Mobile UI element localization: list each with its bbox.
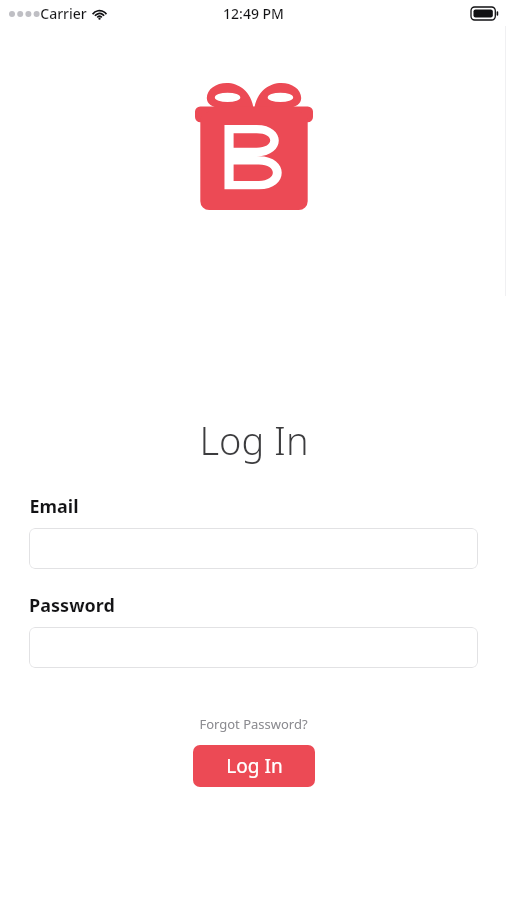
button[interactable]: Log In	[193, 745, 315, 787]
staticText: Email	[29, 494, 79, 519]
staticText: Log In	[226, 753, 283, 779]
button[interactable]: Forgot Password?	[193, 712, 314, 736]
button[interactable]	[29, 528, 478, 569]
staticText: Forgot Password?	[199, 715, 308, 733]
staticText: Password	[29, 593, 115, 618]
staticText: 12:49 PM	[223, 4, 284, 23]
staticText: Log In	[199, 414, 309, 466]
other: App logo	[195, 78, 313, 210]
button[interactable]	[29, 627, 478, 668]
staticText: Carrier	[40, 4, 87, 23]
